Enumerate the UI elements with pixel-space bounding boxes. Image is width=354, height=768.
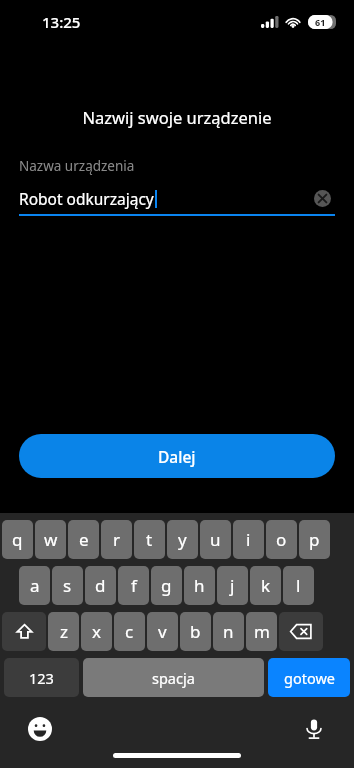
staticText: h xyxy=(194,574,205,597)
staticText: z xyxy=(60,620,68,643)
button[interactable]: p xyxy=(299,520,330,559)
staticText: Nazwij swoje urządzenie xyxy=(0,106,354,128)
staticText: u xyxy=(210,528,221,551)
button[interactable]: l xyxy=(283,566,314,605)
staticText: 61 xyxy=(315,16,326,28)
button[interactable]: gotowe xyxy=(268,658,350,697)
button[interactable]: spacja xyxy=(83,658,264,697)
staticText: c xyxy=(125,620,134,643)
staticText: 123 xyxy=(29,668,54,688)
button[interactable]: t xyxy=(134,520,165,559)
staticText: m xyxy=(254,620,270,643)
button[interactable]: m xyxy=(246,612,277,651)
button[interactable]: 123 xyxy=(4,658,79,697)
staticText: Dalej xyxy=(158,446,196,467)
button[interactable]: f xyxy=(118,566,149,605)
button[interactable]: v xyxy=(147,612,178,651)
button[interactable]: Shift xyxy=(2,612,46,651)
staticText: n xyxy=(223,620,234,643)
staticText: g xyxy=(161,574,172,597)
staticText: j xyxy=(230,574,235,597)
staticText: d xyxy=(95,574,106,597)
button[interactable]: i xyxy=(233,520,264,559)
staticText: a xyxy=(30,574,40,597)
staticText: s xyxy=(63,574,72,597)
button[interactable]: r xyxy=(101,520,132,559)
staticText: gotowe xyxy=(284,668,335,688)
button[interactable]: o xyxy=(266,520,297,559)
staticText: Nazwa urządzenia xyxy=(19,157,135,175)
button[interactable]: b xyxy=(180,612,211,651)
button[interactable]: q xyxy=(2,520,33,559)
staticText: o xyxy=(276,528,287,551)
button[interactable]: z xyxy=(48,612,79,651)
staticText: i xyxy=(246,528,251,551)
button[interactable]: Dyktowanie głosowe xyxy=(296,711,332,747)
staticText: v xyxy=(158,620,167,643)
button[interactable]: h xyxy=(184,566,215,605)
staticText: q xyxy=(12,528,23,551)
button[interactable]: s xyxy=(52,566,83,605)
button[interactable]: g xyxy=(151,566,182,605)
button[interactable]: Emoji xyxy=(22,711,58,747)
staticText: x xyxy=(92,620,101,643)
button[interactable]: n xyxy=(213,612,244,651)
button[interactable]: Backspace xyxy=(279,612,323,651)
button[interactable]: w xyxy=(35,520,66,559)
button[interactable]: k xyxy=(250,566,281,605)
button[interactable]: x xyxy=(81,612,112,651)
staticText: f xyxy=(131,574,137,597)
staticText: p xyxy=(309,528,320,551)
staticText: y xyxy=(178,528,187,551)
button[interactable]: c xyxy=(114,612,145,651)
staticText: k xyxy=(261,574,271,597)
staticText: r xyxy=(113,528,121,551)
staticText: b xyxy=(190,620,201,643)
button[interactable]: a xyxy=(19,566,50,605)
button[interactable]: Wyczyść xyxy=(309,185,335,211)
button[interactable]: Dalej xyxy=(19,434,335,478)
staticText: w xyxy=(44,528,58,551)
button[interactable]: e xyxy=(68,520,99,559)
staticText: spacja xyxy=(152,668,195,688)
button[interactable]: y xyxy=(167,520,198,559)
staticText: t xyxy=(146,528,153,551)
button[interactable]: j xyxy=(217,566,248,605)
button[interactable]: u xyxy=(200,520,231,559)
staticText: Robot odkurzający xyxy=(19,188,154,209)
staticText: l xyxy=(296,574,301,597)
staticText: e xyxy=(79,528,89,551)
button[interactable]: d xyxy=(85,566,116,605)
staticText: 13:25 xyxy=(42,12,81,32)
